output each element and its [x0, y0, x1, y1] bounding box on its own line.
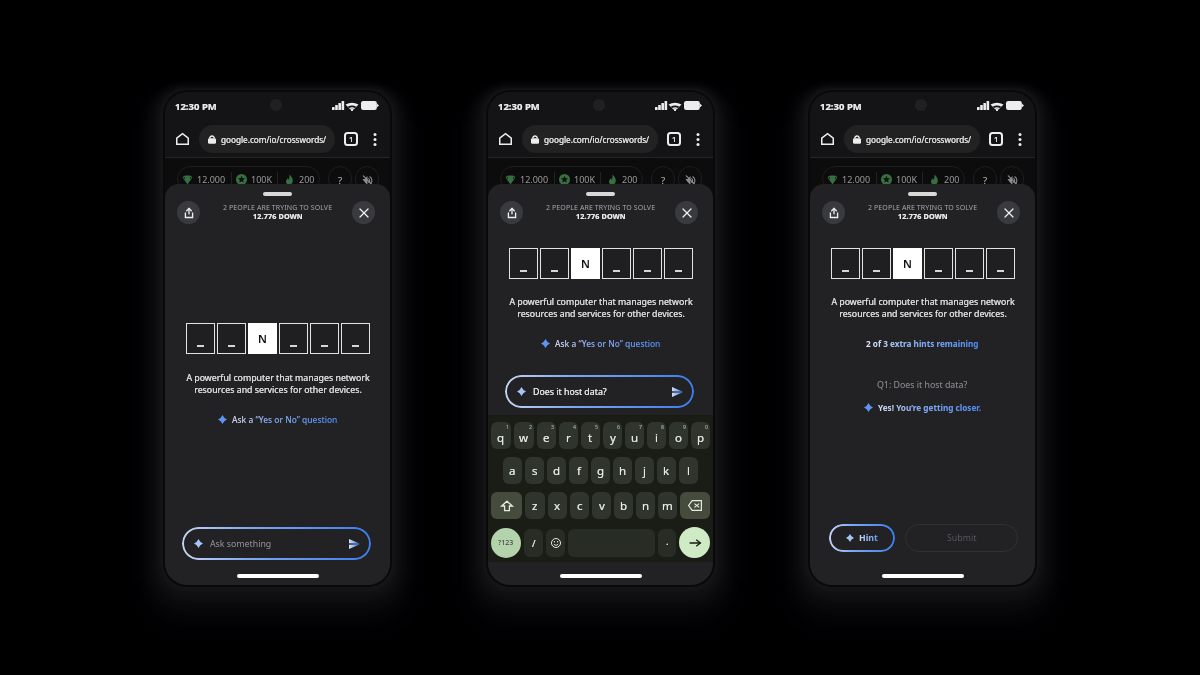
button[interactable]: 100K — [232, 166, 277, 192]
button[interactable] — [987, 249, 1014, 278]
button[interactable]: 2 — [514, 422, 534, 449]
button[interactable] — [342, 324, 369, 353]
button[interactable]: Mute — [355, 166, 379, 192]
button[interactable]: Does it host data? — [505, 375, 694, 408]
button[interactable]: Shift — [491, 492, 522, 519]
staticText: 12:30 PM — [820, 100, 862, 113]
button[interactable]: f — [569, 457, 588, 484]
button[interactable]: Yes! You’re getting closer. — [864, 402, 982, 413]
button[interactable]: Mute — [1000, 166, 1024, 192]
button[interactable]: g — [591, 457, 610, 484]
button[interactable]: . — [658, 529, 676, 557]
button[interactable]: 8 — [647, 422, 666, 449]
button[interactable]: 7 — [625, 422, 644, 449]
button[interactable]: 5 — [581, 422, 600, 449]
button[interactable]: More options — [1009, 125, 1031, 153]
staticText: 1 — [506, 423, 509, 430]
button[interactable]: 100K — [555, 166, 600, 192]
button[interactable]: More options — [687, 125, 709, 153]
button[interactable] — [665, 249, 692, 278]
staticText: Ask something — [210, 538, 349, 550]
button[interactable] — [603, 249, 630, 278]
button[interactable]: Tabs — [338, 125, 364, 153]
button[interactable]: s — [525, 457, 544, 484]
button[interactable]: Enter — [679, 527, 710, 558]
button[interactable]: 12.000 — [177, 166, 231, 192]
button[interactable]: 2 of 3 extra hints remaining — [866, 338, 979, 349]
button[interactable]: Close — [352, 201, 375, 224]
button[interactable]: Home — [494, 125, 516, 153]
button[interactable]: Hint — [829, 524, 895, 552]
button[interactable]: 200 — [278, 166, 320, 192]
button[interactable]: ? — [328, 166, 352, 192]
button[interactable]: 200 — [601, 166, 643, 192]
button[interactable]: ? — [973, 166, 997, 192]
button[interactable]: l — [679, 457, 698, 484]
button[interactable]: Home — [816, 125, 838, 153]
button[interactable]: c — [570, 492, 589, 519]
button[interactable]: Share — [822, 201, 845, 224]
button[interactable] — [956, 249, 983, 278]
button[interactable]: 4 — [559, 422, 578, 449]
button[interactable] — [832, 249, 859, 278]
button[interactable]: x — [548, 492, 567, 519]
button[interactable]: More options — [364, 125, 386, 153]
button[interactable]: n — [636, 492, 655, 519]
button[interactable]: Ask a “Yes or No” question — [541, 338, 661, 349]
button[interactable]: 12.000 — [500, 166, 554, 192]
staticText: Ask a “Yes or No” question — [555, 338, 661, 349]
staticText: p — [697, 430, 705, 446]
button[interactable]: j — [635, 457, 654, 484]
button[interactable]: z — [525, 492, 545, 519]
button[interactable]: 9 — [669, 422, 688, 449]
button[interactable]: v — [592, 492, 611, 519]
button[interactable]: N — [249, 324, 276, 353]
button[interactable]: 1 — [491, 422, 511, 449]
button[interactable]: Ask something — [182, 527, 371, 560]
button[interactable]: k — [657, 457, 676, 484]
button[interactable]: google.com/io/crosswords/ — [522, 125, 658, 153]
button[interactable]: b — [614, 492, 633, 519]
button[interactable]: google.com/io/crosswords/ — [844, 125, 980, 153]
button[interactable]: Share — [500, 201, 523, 224]
button[interactable] — [280, 324, 307, 353]
button[interactable]: Tabs — [661, 125, 687, 153]
button[interactable]: a — [503, 457, 522, 484]
button[interactable]: Backspace — [680, 492, 710, 519]
button[interactable]: h — [613, 457, 632, 484]
button[interactable]: Ask a “Yes or No” question — [218, 414, 338, 425]
button[interactable]: N — [894, 249, 921, 278]
button[interactable]: N — [572, 249, 599, 278]
button[interactable]: Share — [177, 201, 200, 224]
button[interactable]: 100K — [877, 166, 922, 192]
button[interactable]: Submit — [905, 524, 1018, 552]
button[interactable] — [925, 249, 952, 278]
button[interactable]: Close — [675, 201, 698, 224]
button[interactable] — [218, 324, 245, 353]
button[interactable]: / — [524, 529, 543, 557]
button[interactable]: 6 — [603, 422, 622, 449]
button[interactable]: ?123 — [491, 528, 521, 558]
button[interactable] — [311, 324, 338, 353]
button[interactable]: Emoji — [546, 529, 565, 557]
button[interactable]: 12.000 — [822, 166, 876, 192]
staticText: A powerful computer that manages network… — [182, 372, 374, 395]
button[interactable]: Home — [171, 125, 193, 153]
button[interactable]: Close — [997, 201, 1020, 224]
button[interactable]: Tabs — [983, 125, 1009, 153]
button[interactable] — [510, 249, 537, 278]
button[interactable]: google.com/io/crosswords/ — [199, 125, 335, 153]
button[interactable]: 0 — [691, 422, 710, 449]
button[interactable]: Mute — [678, 166, 702, 192]
button[interactable] — [863, 249, 890, 278]
button[interactable]: 200 — [923, 166, 965, 192]
button[interactable]: m — [658, 492, 677, 519]
button[interactable]: d — [547, 457, 566, 484]
button[interactable] — [634, 249, 661, 278]
button[interactable] — [541, 249, 568, 278]
staticText: a — [509, 463, 516, 479]
button[interactable] — [187, 324, 214, 353]
button[interactable]: ? — [651, 166, 675, 192]
button[interactable]: 3 — [537, 422, 556, 449]
